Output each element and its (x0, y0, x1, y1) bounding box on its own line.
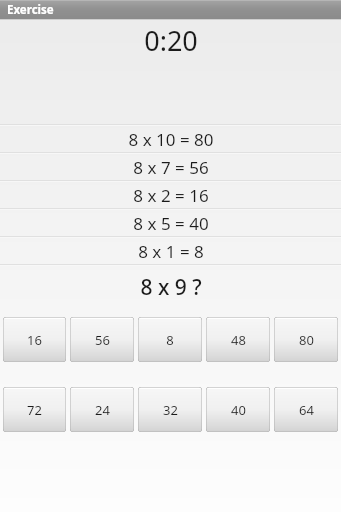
button[interactable]: 8 x 5 = 40 (0, 210, 341, 236)
staticText: 8 x 9 ? (140, 273, 202, 302)
staticText: 8 x 10 = 80 (128, 128, 214, 151)
button[interactable]: 24 (70, 387, 134, 432)
staticText: 8 x 5 = 40 (133, 212, 209, 235)
button[interactable]: 64 (274, 387, 338, 432)
staticText: 8 x 2 = 16 (133, 184, 209, 207)
button[interactable]: 48 (206, 317, 270, 362)
staticText: 64 (299, 401, 314, 419)
staticText: 56 (95, 331, 110, 349)
staticText: 0:20 (144, 22, 198, 59)
staticText: 8 (166, 331, 174, 349)
staticText: 8 x 7 = 56 (133, 156, 209, 179)
button[interactable]: 56 (70, 317, 134, 362)
button[interactable]: 16 (3, 317, 66, 362)
staticText: 8 x 1 = 8 (138, 240, 204, 263)
button[interactable]: 8 (138, 317, 202, 362)
staticText: 80 (299, 331, 314, 349)
staticText: 72 (27, 401, 42, 419)
button[interactable]: 8 x 1 = 8 (0, 238, 341, 264)
button[interactable]: 32 (138, 387, 202, 432)
staticText: 48 (231, 331, 246, 349)
staticText: 32 (163, 401, 178, 419)
button[interactable]: 72 (3, 387, 66, 432)
staticText: Exercise (7, 2, 54, 18)
button[interactable]: 8 x 2 = 16 (0, 182, 341, 208)
staticText: 40 (231, 401, 246, 419)
button[interactable]: 8 x 10 = 80 (0, 126, 341, 152)
button[interactable]: 8 x 7 = 56 (0, 154, 341, 180)
button[interactable]: 80 (274, 317, 338, 362)
staticText: 24 (95, 401, 110, 419)
staticText: 16 (27, 331, 42, 349)
button[interactable]: 40 (206, 387, 270, 432)
